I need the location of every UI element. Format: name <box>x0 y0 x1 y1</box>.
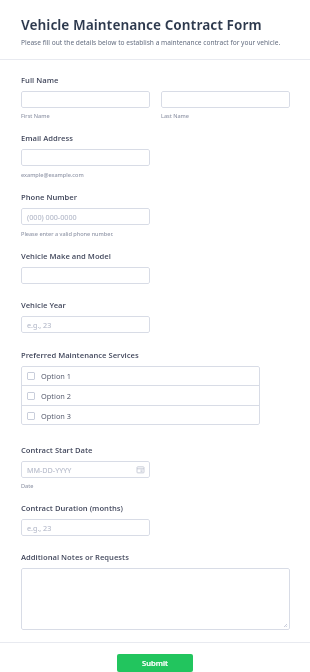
button[interactable]: First Name <box>21 91 150 108</box>
button[interactable]: Option 3 <box>21 406 260 425</box>
staticText: Email Address <box>21 133 73 143</box>
staticText: Vehicle Maintenance Contract Form <box>21 16 262 34</box>
staticText: MM-DD-YYYY <box>27 465 72 475</box>
staticText: Additional Notes or Requests <box>21 552 129 562</box>
button[interactable]: Option 1 <box>21 366 260 385</box>
staticText: Contract Duration (months) <box>21 503 124 513</box>
button[interactable]: Vehicle Make and Model <box>21 267 150 284</box>
button[interactable]: Contract Start Date <box>21 461 150 478</box>
staticText: e.g., 23 <box>27 523 52 533</box>
staticText: example@example.com <box>21 171 84 179</box>
button[interactable]: Last Name <box>161 91 290 108</box>
staticText: Preferred Maintenance Services <box>21 350 139 360</box>
button[interactable]: Email Address <box>21 149 150 166</box>
button[interactable]: Additional Notes or Requests <box>21 568 290 630</box>
staticText: Last Name <box>161 112 189 120</box>
staticText: Vehicle Make and Model <box>21 251 111 261</box>
button[interactable]: Option 2 <box>21 386 260 405</box>
staticText: Option 1 <box>41 371 72 381</box>
staticText: Full Name <box>21 75 59 85</box>
staticText: Contract Start Date <box>21 445 93 455</box>
staticText: (000) 000-0000 <box>27 212 77 222</box>
staticText: Vehicle Year <box>21 300 66 310</box>
button[interactable]: Phone Number <box>21 208 150 225</box>
staticText: Phone Number <box>21 192 78 202</box>
staticText: Option 2 <box>41 391 72 401</box>
button[interactable]: Contract Duration <box>21 519 150 536</box>
button[interactable]: Vehicle Year <box>21 316 150 333</box>
staticText: First Name <box>21 112 50 120</box>
staticText: e.g., 23 <box>27 320 52 330</box>
staticText: Please enter a valid phone number. <box>21 230 114 238</box>
staticText: Option 3 <box>41 411 72 421</box>
staticText: Date <box>21 482 34 490</box>
button[interactable]: Submit <box>117 654 193 672</box>
staticText: Please fill out the details below to est… <box>21 38 281 47</box>
staticText: Submit <box>142 658 168 668</box>
